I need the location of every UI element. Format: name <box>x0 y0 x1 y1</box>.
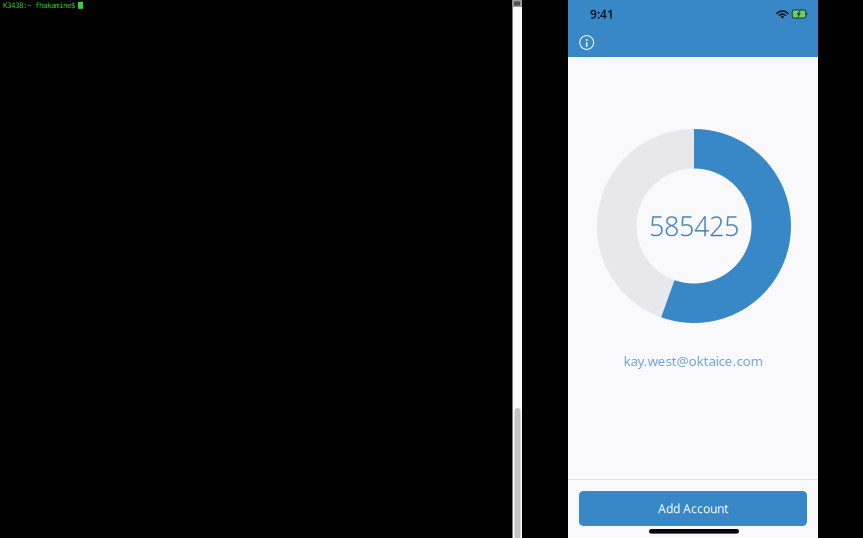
staticText: 9:41 <box>590 6 614 22</box>
button[interactable]: Info <box>571 28 602 57</box>
staticText: Add Account <box>658 500 728 516</box>
staticText: 585425 <box>649 208 739 244</box>
staticText: K3438:~ fhakamine$ <box>3 1 75 10</box>
staticText: kay.west@oktaice.com <box>623 352 762 370</box>
button[interactable]: Add Account <box>579 491 807 526</box>
